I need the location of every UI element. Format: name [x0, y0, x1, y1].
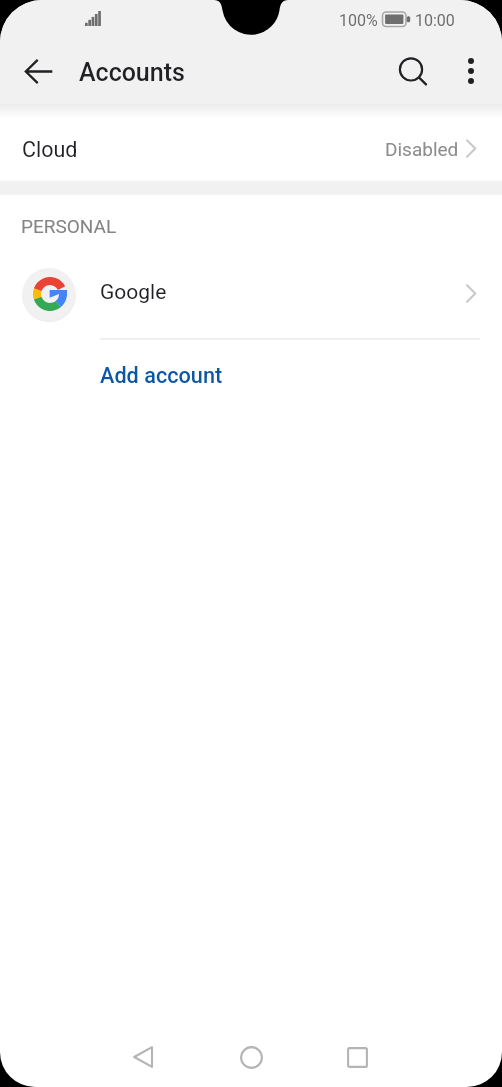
staticText: 10:00: [415, 11, 455, 30]
button[interactable]: Recent apps: [329, 1029, 385, 1085]
button[interactable]: Search: [386, 45, 442, 101]
staticText: 100%: [339, 11, 378, 30]
button[interactable]: Home: [223, 1029, 279, 1085]
staticText: Google: [100, 280, 167, 305]
staticText: Disabled: [385, 138, 459, 160]
staticText: Accounts: [79, 58, 185, 87]
button[interactable]: Cloud: [0, 104, 502, 182]
button[interactable]: Add account: [0, 339, 502, 407]
staticText: PERSONAL: [21, 215, 117, 237]
button[interactable]: Google: [0, 256, 502, 332]
button[interactable]: Back: [115, 1029, 171, 1085]
button[interactable]: Navigate up: [10, 43, 66, 99]
button[interactable]: More options: [443, 43, 499, 99]
staticText: Cloud: [22, 137, 78, 162]
staticText: Add account: [100, 363, 223, 388]
